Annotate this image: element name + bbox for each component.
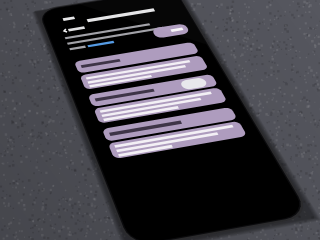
button[interactable]: Phone showing Battery Health and Chargin…: [0, 0, 320, 240]
